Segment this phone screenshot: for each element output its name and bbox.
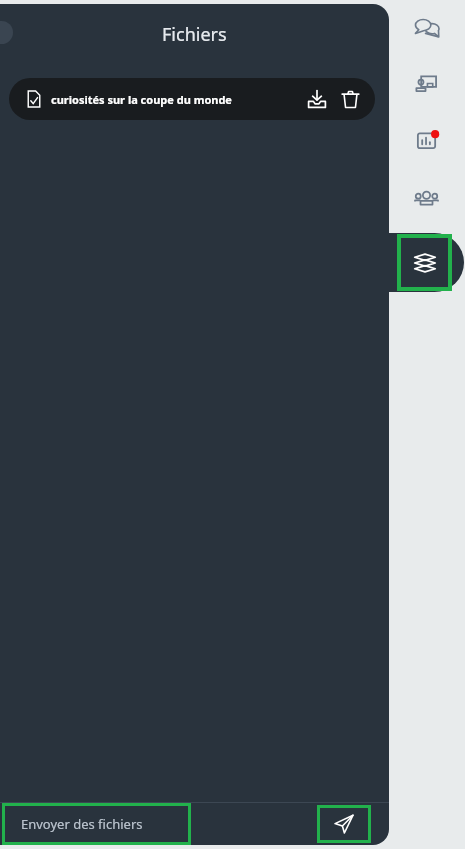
button[interactable]: Back bbox=[0, 21, 13, 44]
button[interactable]: Présentation bbox=[400, 62, 452, 104]
staticText: Fichiers bbox=[162, 22, 227, 47]
button[interactable]: Fichiers bbox=[373, 233, 464, 292]
button[interactable]: Send bbox=[317, 805, 371, 843]
button[interactable]: Download bbox=[303, 85, 331, 113]
button[interactable]: Sondage bbox=[401, 119, 453, 161]
button[interactable]: Delete bbox=[336, 85, 364, 113]
button[interactable]: Chat bbox=[401, 7, 453, 49]
button[interactable]: Envoyer des fichiers bbox=[2, 803, 191, 845]
button[interactable]: Participants bbox=[400, 177, 452, 219]
staticText: Envoyer des fichiers bbox=[21, 815, 143, 833]
button[interactable]: curiosités sur la coupe du monde bbox=[9, 78, 375, 120]
staticText: curiosités sur la coupe du monde bbox=[51, 92, 232, 107]
